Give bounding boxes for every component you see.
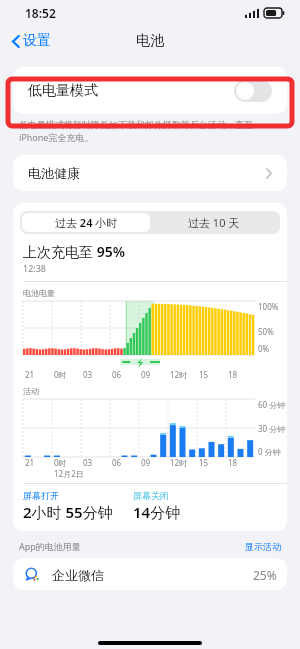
button[interactable]: 低电量模式开关 [234,80,272,102]
staticText: 设置 [23,32,51,50]
staticText: 过去 10 天 [188,215,240,230]
staticText: 21 [25,369,35,380]
staticText: 18 [228,369,238,380]
staticText: 21 [25,457,35,468]
button[interactable]: 显示活动 [245,541,281,552]
staticText: 12时 [170,369,188,380]
staticText: 上次充电至 95% [23,242,125,261]
staticText: 09 [141,457,151,468]
staticText: 09 [141,369,151,380]
button[interactable]: 低电量模式 [13,67,287,114]
staticText: 0时 [54,457,67,468]
staticText: 企业微信 [52,567,253,583]
button[interactable]: 设置 [9,28,54,54]
staticText: 15 [199,369,209,380]
staticText: 25% [253,567,277,583]
staticText: 03 [83,369,93,380]
button[interactable]: 过去 10 天 [150,213,278,232]
staticText: 06 [112,369,122,380]
staticText: 2小时 55分钟 [23,502,113,522]
button[interactable]: 企业微信 [13,558,287,590]
staticText: 18 [228,457,238,468]
staticText: 0% [258,343,270,354]
staticText: 显示活动 [245,541,281,552]
staticText: 0 分钟 [258,446,281,457]
staticText: 60 分钟 [258,399,286,410]
staticText: 06 [112,457,122,468]
button[interactable]: 电池健康 [13,155,287,191]
staticText: 0时 [54,369,67,380]
staticText: 电池 [136,32,164,50]
staticText: 12时 [170,457,188,468]
staticText: 50% [258,326,274,337]
staticText: App的电池用量 [19,540,245,552]
staticText: 电池电量 [23,288,55,298]
staticText: 屏幕打开 [23,490,59,501]
staticText: 14分钟 [133,502,181,522]
staticText: 低电量模式将暂时降低如下载和邮件抓取等后台活动，直至 iPhone完全充电。 [19,119,253,143]
staticText: 15 [199,457,209,468]
staticText: 屏幕关闭 [133,490,169,501]
staticText: 100% [258,301,279,312]
staticText: 03 [83,457,93,468]
staticText: 18:52 [25,5,56,21]
staticText: 30 分钟 [258,423,286,434]
staticText: 过去 24 小时 [55,215,118,230]
staticText: 12月2日 [54,468,84,479]
staticText: 12:38 [23,262,47,274]
staticText: 低电量模式 [28,82,234,100]
staticText: 电池健康 [28,165,266,181]
button[interactable]: 过去 24 小时 [22,213,150,232]
staticText: 活动 [23,386,39,396]
